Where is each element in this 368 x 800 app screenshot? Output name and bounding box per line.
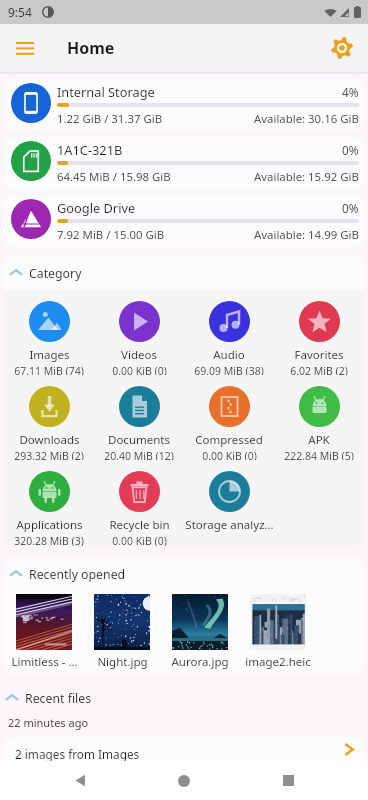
- staticText: Recent files: [25, 690, 92, 707]
- button[interactable]: Recents: [264, 761, 312, 800]
- staticText: Videos: [121, 347, 157, 363]
- staticText: 64.45 MiB / 15.98 GiB: [57, 169, 254, 185]
- staticText: Limitless - …: [11, 654, 78, 670]
- button[interactable]: Recent files: [0, 681, 368, 715]
- button[interactable]: Favorites: [274, 290, 364, 375]
- button[interactable]: APK: [274, 375, 364, 460]
- button[interactable]: Internal Storage: [4, 79, 364, 131]
- button[interactable]: Images: [4, 290, 94, 375]
- button[interactable]: Back: [56, 761, 104, 800]
- button[interactable]: 1A1C-321B: [4, 137, 364, 189]
- staticText: Audio: [213, 347, 245, 363]
- staticText: 0%: [342, 200, 359, 216]
- button[interactable]: Google Drive: [4, 195, 364, 247]
- staticText: 69.09 MiB (38): [194, 364, 264, 375]
- staticText: 0%: [342, 142, 359, 158]
- staticText: 2 images from Images: [15, 746, 344, 762]
- staticText: 22 minutes ago: [8, 715, 89, 730]
- button[interactable]: Aurora.jpg: [161, 591, 239, 670]
- button[interactable]: Limitless - …: [5, 591, 83, 670]
- button[interactable]: Downloads: [4, 375, 94, 460]
- staticText: 4%: [342, 84, 359, 100]
- staticText: 1.22 GiB / 31.37 GiB: [57, 111, 254, 127]
- staticText: Home: [67, 37, 115, 59]
- staticText: Night.jpg: [97, 654, 148, 670]
- button[interactable]: Videos: [94, 290, 184, 375]
- button[interactable]: Settings: [318, 24, 366, 72]
- button[interactable]: Compressed: [184, 375, 274, 460]
- staticText: Category: [29, 265, 82, 282]
- button[interactable]: Menu: [1, 24, 49, 72]
- staticText: 222.84 MiB (5): [284, 449, 354, 460]
- staticText: Available: 30.16 GiB: [254, 111, 359, 127]
- staticText: Available: 15.92 GiB: [254, 169, 359, 185]
- staticText: Available: 14.99 GiB: [254, 227, 359, 243]
- button[interactable]: Recently opened: [4, 557, 364, 591]
- staticText: Images: [29, 347, 70, 363]
- staticText: 0.00 KiB (0): [202, 449, 257, 460]
- staticText: 67.11 MiB (74): [14, 364, 84, 375]
- staticText: 1A1C-321B: [57, 141, 342, 158]
- staticText: 320.28 MiB (3): [14, 534, 84, 546]
- staticText: 0.00 KiB (0): [112, 364, 167, 375]
- button[interactable]: Night.jpg: [83, 591, 161, 670]
- staticText: Recycle bin: [109, 517, 170, 533]
- staticText: Applications: [16, 517, 83, 533]
- button[interactable]: 2 images from Images: [4, 737, 364, 787]
- button[interactable]: Storage analyz…: [184, 460, 274, 533]
- staticText: Documents: [108, 432, 170, 448]
- button[interactable]: Home: [160, 761, 208, 800]
- staticText: 9:54: [8, 4, 32, 20]
- button[interactable]: Documents: [94, 375, 184, 460]
- staticText: Compressed: [195, 432, 263, 448]
- staticText: Storage analyz…: [185, 517, 274, 533]
- button[interactable]: Audio: [184, 290, 274, 375]
- button[interactable]: Category: [4, 256, 364, 290]
- staticText: 7.92 MiB / 15.00 GiB: [57, 227, 254, 243]
- staticText: Downloads: [19, 432, 80, 448]
- button[interactable]: Recycle bin: [94, 460, 184, 546]
- button[interactable]: image2.heic: [239, 591, 317, 670]
- staticText: APK: [308, 432, 330, 448]
- staticText: Recently opened: [29, 566, 126, 583]
- staticText: Aurora.jpg: [171, 654, 229, 670]
- staticText: 0.00 KiB (0): [112, 534, 167, 546]
- button[interactable]: Applications: [4, 460, 94, 546]
- staticText: Google Drive: [57, 199, 342, 216]
- staticText: 6.02 MiB (2): [290, 364, 348, 375]
- staticText: Favorites: [294, 347, 344, 363]
- staticText: Internal Storage: [57, 83, 342, 100]
- staticText: 20.40 MiB (12): [104, 449, 174, 460]
- staticText: 293.32 MiB (2): [14, 449, 84, 460]
- staticText: image2.heic: [245, 654, 311, 670]
